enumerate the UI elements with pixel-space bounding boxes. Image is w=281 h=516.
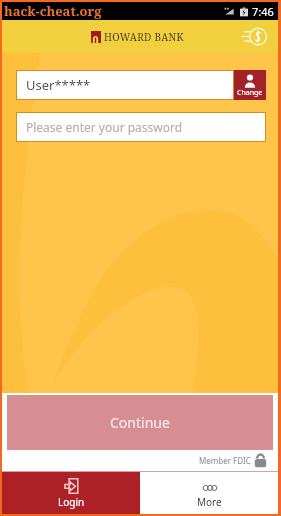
button[interactable]: User*****	[16, 70, 234, 100]
staticText: Change	[237, 88, 263, 98]
staticText: User*****	[26, 76, 91, 94]
button[interactable]: Login	[2, 472, 140, 514]
staticText: Member FDIC	[199, 455, 251, 466]
button[interactable]: More	[140, 472, 278, 514]
staticText: 7:46	[252, 4, 274, 19]
staticText: HOWARD BANK	[104, 30, 184, 44]
button[interactable]: Change	[234, 70, 266, 100]
staticText: Continue	[110, 413, 170, 432]
staticText: Please enter your password	[26, 119, 183, 135]
button[interactable]: Quick balance	[241, 27, 269, 46]
button[interactable]: Continue	[7, 395, 273, 450]
staticText: More	[197, 495, 222, 509]
button[interactable]: Please enter your password	[16, 112, 266, 142]
staticText: hack-cheat.org	[4, 2, 102, 20]
staticText: Login	[58, 495, 85, 509]
